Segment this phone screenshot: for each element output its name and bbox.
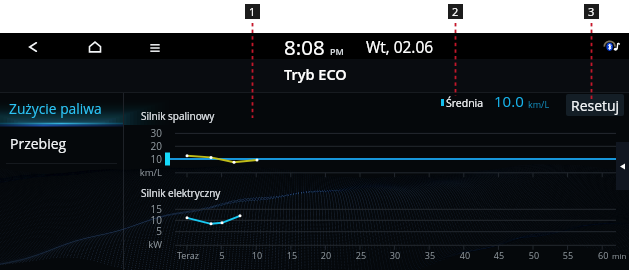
staticText: min [612, 250, 627, 261]
staticText: Silnik spalinowy [141, 109, 215, 123]
staticText: Resetuj [571, 96, 620, 115]
staticText: 35 [400, 249, 460, 261]
staticText: 3 [588, 4, 595, 19]
button[interactable]: Zużycie paliwa [0, 93, 123, 124]
staticText: 40 [435, 249, 495, 261]
staticText: 10 [112, 213, 162, 227]
button[interactable]: Przebieg [0, 128, 123, 161]
staticText: 25 [331, 249, 391, 261]
staticText: Teraz [158, 249, 218, 261]
staticText: 2 [452, 4, 459, 19]
staticText: Silnik elektryczny [141, 186, 221, 200]
staticText: kW [112, 238, 162, 251]
staticText: 30 [112, 126, 162, 140]
staticText: 10 [227, 249, 287, 261]
staticText: 10 [112, 152, 162, 166]
staticText: 5 [112, 224, 162, 238]
staticText: PM [330, 45, 344, 57]
staticText: Tryb ECO [284, 65, 347, 85]
staticText: 8:08 [284, 33, 325, 59]
staticText: 20 [112, 139, 162, 153]
staticText: 30 [365, 249, 425, 261]
button[interactable]: Menu [142, 35, 168, 61]
staticText: 15 [262, 249, 322, 261]
staticText: 55 [538, 249, 598, 261]
staticText: 15 [112, 202, 162, 216]
staticText: Zużycie paliwa [9, 99, 102, 118]
staticText: km/L [528, 98, 550, 110]
staticText: 45 [469, 249, 529, 261]
button[interactable]: Back [20, 34, 46, 60]
staticText: 5 [192, 249, 252, 261]
staticText: Średnia [446, 96, 484, 110]
staticText: 10.0 [494, 91, 524, 111]
button[interactable]: Bluetooth audio [601, 35, 623, 57]
staticText: 50 [504, 249, 564, 261]
staticText: Przebieg [10, 134, 67, 153]
button[interactable]: Scroll left [616, 142, 629, 190]
button[interactable]: Home [82, 34, 108, 60]
staticText: Wt, 02.06 [366, 36, 434, 57]
button[interactable]: Resetuj [566, 94, 624, 116]
staticText: km/L [112, 166, 162, 179]
staticText: 1 [249, 4, 256, 19]
staticText: 20 [296, 249, 356, 261]
staticText: 60 [598, 249, 609, 261]
